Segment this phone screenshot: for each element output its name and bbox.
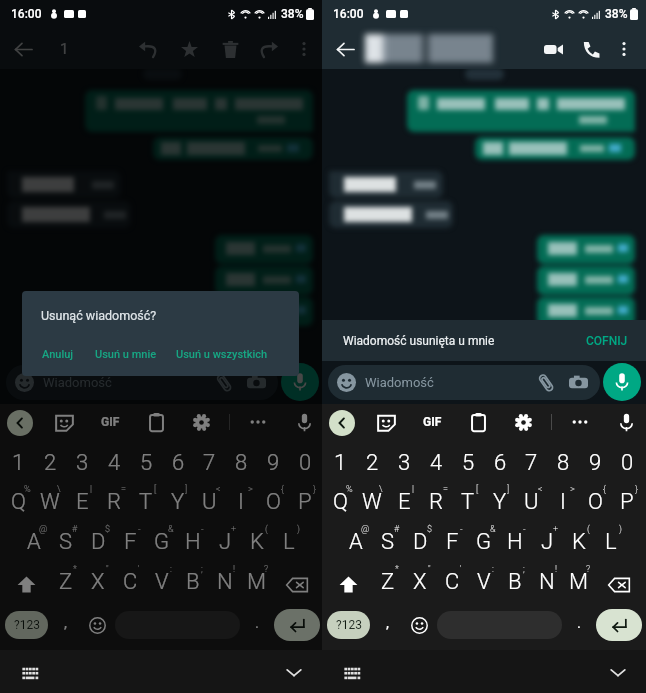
button[interactable]: G — [468, 527, 500, 557]
button[interactable]: Q — [2, 487, 34, 517]
button[interactable]: N — [209, 567, 241, 597]
button[interactable]: K — [241, 527, 273, 557]
button[interactable]: Forward — [257, 37, 281, 61]
button[interactable]: Voice input — [614, 410, 638, 434]
button[interactable]: Shift — [13, 571, 39, 597]
button[interactable]: L — [595, 527, 627, 557]
button[interactable]: Emoji — [88, 616, 106, 634]
button[interactable]: 8 — [547, 448, 579, 478]
button[interactable]: Stickers — [374, 410, 398, 434]
button[interactable]: ?123 — [327, 611, 370, 639]
button[interactable]: B — [499, 567, 531, 597]
button[interactable]: Y — [484, 487, 516, 517]
button[interactable]: M — [241, 567, 273, 597]
button[interactable]: More options — [292, 37, 316, 61]
button[interactable]: Z — [50, 567, 82, 597]
button[interactable]: Close toolbar — [7, 410, 33, 436]
button[interactable]: Usuń u wszystkich — [176, 348, 268, 361]
button[interactable]: Enter — [596, 609, 642, 641]
button[interactable]: More — [568, 410, 592, 434]
button[interactable]: Enter — [274, 609, 320, 641]
button[interactable]: R — [420, 487, 452, 517]
button[interactable]: R — [98, 487, 130, 517]
button[interactable]: Hide keyboard — [606, 660, 630, 684]
button[interactable]: E — [66, 487, 98, 517]
button[interactable]: Q — [324, 487, 356, 517]
button[interactable]: D — [404, 527, 436, 557]
button[interactable]: 1 — [2, 448, 34, 478]
button[interactable]: Period — [571, 614, 587, 630]
button[interactable]: J — [209, 527, 241, 557]
button[interactable]: Period — [249, 614, 265, 630]
button[interactable]: Change keyboard — [339, 660, 363, 684]
button[interactable]: Contact info — [365, 34, 493, 63]
button[interactable]: P — [289, 487, 321, 517]
button[interactable]: More — [246, 410, 270, 434]
button[interactable]: U — [193, 487, 225, 517]
button[interactable]: F — [114, 527, 146, 557]
button[interactable]: Video call — [540, 36, 566, 62]
button[interactable]: Comma — [379, 614, 395, 630]
button[interactable]: 9 — [579, 448, 611, 478]
button[interactable]: X — [404, 567, 436, 597]
button[interactable]: 4 — [420, 448, 452, 478]
button[interactable]: Hide keyboard — [282, 660, 306, 684]
button[interactable]: U — [515, 487, 547, 517]
button[interactable]: S — [50, 527, 82, 557]
button[interactable]: W — [356, 487, 388, 517]
button[interactable]: Backspace — [283, 571, 311, 599]
button[interactable]: Wiadomość — [6, 365, 278, 400]
button[interactable]: C — [436, 567, 468, 597]
button[interactable]: Stickers — [52, 410, 76, 434]
button[interactable]: 0 — [611, 448, 643, 478]
button[interactable]: 3 — [388, 448, 420, 478]
button[interactable]: Usuń u mnie — [95, 348, 157, 361]
button[interactable]: G — [146, 527, 178, 557]
button[interactable]: Record voice message — [281, 363, 319, 401]
button[interactable]: I — [547, 487, 579, 517]
button[interactable]: 9 — [257, 448, 289, 478]
button[interactable]: COFNIJ — [586, 334, 646, 348]
button[interactable]: Back — [333, 37, 357, 61]
button[interactable]: 3 — [66, 448, 98, 478]
button[interactable]: Close toolbar — [329, 410, 355, 436]
button[interactable]: ?123 — [5, 611, 48, 639]
button[interactable]: 8 — [225, 448, 257, 478]
button[interactable]: D — [82, 527, 114, 557]
button[interactable]: J — [531, 527, 563, 557]
button[interactable]: O — [579, 487, 611, 517]
button[interactable]: Settings — [511, 410, 535, 434]
button[interactable]: 0 — [289, 448, 321, 478]
button[interactable]: I — [225, 487, 257, 517]
button[interactable]: M — [563, 567, 595, 597]
button[interactable]: V — [146, 567, 178, 597]
button[interactable]: Backspace — [605, 571, 633, 599]
button[interactable]: 6 — [162, 448, 194, 478]
button[interactable]: T — [452, 487, 484, 517]
button[interactable]: L — [273, 527, 305, 557]
button[interactable]: H — [499, 527, 531, 557]
button[interactable]: Voice call — [578, 36, 604, 62]
button[interactable]: Y — [162, 487, 194, 517]
button[interactable]: Comma — [57, 614, 73, 630]
button[interactable]: Shift — [335, 571, 361, 597]
button[interactable]: 5 — [130, 448, 162, 478]
button[interactable]: 5 — [452, 448, 484, 478]
button[interactable]: Space — [437, 611, 562, 639]
button[interactable]: Star — [177, 37, 201, 61]
button[interactable]: More options — [612, 37, 636, 61]
button[interactable]: Clipboard — [466, 410, 490, 434]
button[interactable]: A — [18, 527, 50, 557]
button[interactable]: T — [130, 487, 162, 517]
button[interactable]: 7 — [515, 448, 547, 478]
button[interactable]: S — [372, 527, 404, 557]
button[interactable]: Wiadomość — [328, 365, 600, 400]
button[interactable]: C — [114, 567, 146, 597]
button[interactable]: Reply — [136, 37, 160, 61]
button[interactable]: 6 — [484, 448, 516, 478]
button[interactable]: B — [177, 567, 209, 597]
button[interactable]: W — [34, 487, 66, 517]
button[interactable]: 7 — [193, 448, 225, 478]
button[interactable]: Settings — [189, 410, 213, 434]
